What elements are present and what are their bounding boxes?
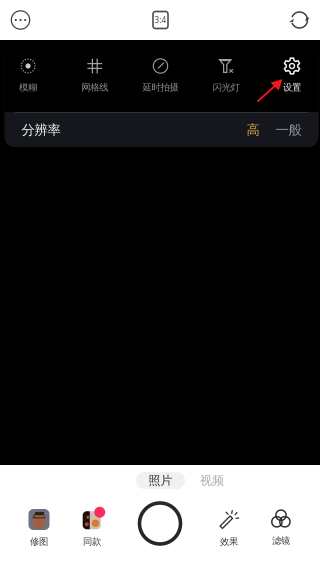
- button[interactable]: 设置: [261, 47, 320, 112]
- staticText: 同款: [83, 536, 101, 547]
- staticText: 照片: [148, 473, 172, 488]
- button[interactable]: Switch camera: [279, 0, 319, 40]
- staticText: 延时拍摄: [142, 81, 178, 93]
- staticText: 模糊: [19, 81, 37, 93]
- button[interactable]: 滤镜: [253, 509, 309, 546]
- staticText: 设置: [283, 81, 301, 93]
- button[interactable]: Aspect ratio 3 to 4: [140, 0, 180, 40]
- button[interactable]: 同款: [64, 509, 120, 547]
- button[interactable]: 修图: [11, 509, 67, 547]
- staticText: 滤镜: [272, 535, 290, 546]
- staticText: 高: [246, 122, 259, 138]
- button[interactable]: 延时拍摄: [129, 47, 191, 112]
- staticText: 3:4: [154, 15, 166, 25]
- button[interactable]: More options: [0, 0, 40, 40]
- button[interactable]: 效果: [201, 509, 257, 547]
- staticText: 效果: [220, 536, 238, 547]
- button[interactable]: 模糊: [0, 47, 59, 112]
- button[interactable]: 照片: [136, 472, 185, 489]
- button[interactable]: 闪光灯: [195, 47, 257, 112]
- staticText: 闪光灯: [213, 81, 240, 93]
- staticText: 一般: [275, 122, 301, 138]
- staticText: 修图: [30, 536, 48, 547]
- button[interactable]: 网格线: [64, 47, 126, 112]
- button[interactable]: Shutter: [132, 496, 187, 551]
- button[interactable]: 高: [238, 117, 267, 143]
- staticText: 视频: [200, 473, 224, 488]
- staticText: 网格线: [81, 81, 108, 93]
- button[interactable]: 视频: [199, 472, 225, 489]
- staticText: 分辨率: [21, 122, 60, 138]
- button[interactable]: 一般: [267, 117, 309, 143]
